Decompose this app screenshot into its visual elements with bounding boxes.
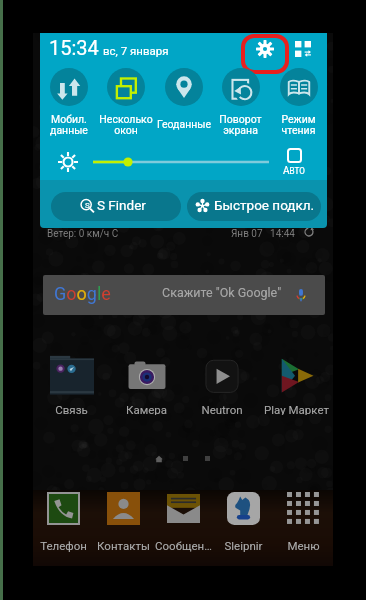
- staticText: Янв 07 14:44: [231, 228, 295, 240]
- button[interactable]: [90, 155, 272, 169]
- button[interactable]: Сообщен…: [153, 492, 213, 554]
- staticText: Ветер: 0 км/ч С: [47, 228, 119, 240]
- button[interactable]: Sleipnir: [213, 492, 273, 554]
- other: Brightness: [58, 152, 78, 172]
- button[interactable]: Refresh weather: [303, 226, 315, 238]
- button[interactable]: Voice search: [294, 288, 308, 302]
- staticText: Sleipnir: [224, 539, 263, 552]
- button[interactable]: Несколько окон: [97, 63, 154, 171]
- button[interactable]: Мобил. данные: [40, 63, 97, 171]
- staticText: S Finder: [97, 197, 146, 213]
- staticText: Режим чтения: [281, 113, 316, 136]
- staticText: Сообщен…: [155, 539, 212, 552]
- button[interactable]: Edit quick settings: [295, 41, 311, 57]
- button[interactable]: Settings: [256, 40, 274, 58]
- button[interactable]: Play Маркет: [259, 355, 334, 415]
- staticText: Камера: [126, 403, 167, 415]
- staticText: Поворот экрана: [219, 113, 262, 136]
- staticText: Быстрое подкл.: [214, 197, 315, 213]
- staticText: Геоданные: [157, 118, 211, 130]
- staticText: S: [85, 201, 90, 210]
- button[interactable]: Google: [43, 275, 325, 315]
- button[interactable]: Режим чтения: [270, 63, 327, 171]
- button[interactable]: Связь: [34, 355, 109, 415]
- button[interactable]: Контакты: [93, 492, 153, 554]
- staticText: Neutron: [201, 403, 243, 415]
- button[interactable]: Быстрое подкл.: [187, 192, 321, 221]
- button[interactable]: Телефон: [33, 492, 93, 554]
- staticText: Контакты: [97, 539, 150, 552]
- staticText: АВТО: [283, 165, 305, 177]
- staticText: Play Маркет: [264, 403, 329, 415]
- button[interactable]: Поворот экрана: [212, 63, 269, 171]
- button[interactable]: Neutron: [184, 355, 259, 415]
- button[interactable]: Меню: [273, 492, 333, 554]
- staticText: 15:34: [49, 36, 99, 59]
- staticText: Google: [54, 283, 111, 304]
- staticText: Телефон: [40, 539, 87, 552]
- staticText: Связь: [55, 403, 88, 415]
- staticText: Несколько окон: [99, 113, 153, 136]
- button[interactable]: S: [51, 192, 181, 221]
- staticText: Мобил. данные: [50, 113, 88, 136]
- button[interactable]: АВТО: [280, 148, 308, 180]
- staticText: Меню: [287, 539, 320, 552]
- staticText: вс, 7 января: [103, 44, 169, 57]
- button[interactable]: Камера: [109, 355, 184, 415]
- staticText: Скажите "Ok Google": [162, 285, 282, 300]
- button[interactable]: Геоданные: [155, 63, 212, 171]
